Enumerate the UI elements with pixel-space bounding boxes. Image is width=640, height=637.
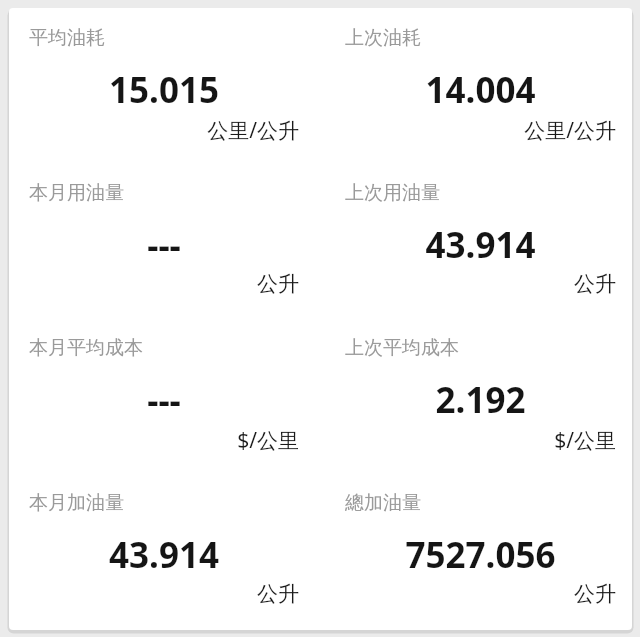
staticText: 本月加油量	[29, 491, 124, 515]
button[interactable]: 上次油耗	[343, 26, 618, 181]
button[interactable]: 上次用油量	[343, 181, 618, 336]
staticText: 上次平均成本	[345, 336, 459, 360]
staticText: 7527.056	[345, 531, 616, 579]
staticText: 上次用油量	[345, 181, 440, 205]
staticText: 15.015	[29, 66, 299, 114]
staticText: ---	[29, 376, 299, 424]
staticText: 公升	[345, 581, 616, 607]
button[interactable]: 本月平均成本	[27, 336, 301, 491]
staticText: 43.914	[345, 221, 616, 269]
staticText: 本月用油量	[29, 181, 124, 205]
staticText: 14.004	[345, 66, 616, 114]
button[interactable]: 本月用油量	[27, 181, 301, 336]
button[interactable]: 平均油耗	[27, 26, 301, 181]
staticText: $/公里	[345, 426, 616, 455]
staticText: 公里/公升	[29, 116, 299, 145]
staticText: 公升	[29, 271, 299, 297]
button[interactable]: 總加油量	[343, 491, 618, 620]
staticText: 43.914	[29, 531, 299, 579]
staticText: 公里/公升	[345, 116, 616, 145]
staticText: $/公里	[29, 426, 299, 455]
staticText: 本月平均成本	[29, 336, 143, 360]
staticText: 平均油耗	[29, 26, 105, 50]
staticText: 公升	[345, 271, 616, 297]
staticText: 公升	[29, 581, 299, 607]
staticText: 上次油耗	[345, 26, 421, 50]
staticText: ---	[29, 221, 299, 269]
button[interactable]: 上次平均成本	[343, 336, 618, 491]
button[interactable]: 本月加油量	[27, 491, 301, 620]
staticText: 總加油量	[345, 491, 421, 515]
staticText: 2.192	[345, 376, 616, 424]
